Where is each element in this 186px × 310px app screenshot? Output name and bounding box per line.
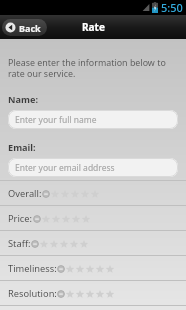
staticText: Overall: bbox=[8, 187, 42, 200]
staticText: Name: bbox=[8, 93, 38, 106]
button[interactable]: Enter your email address bbox=[8, 158, 178, 177]
staticText: Staff: bbox=[8, 237, 31, 250]
button[interactable]: Back bbox=[2, 19, 47, 36]
staticText: Timeliness: bbox=[8, 262, 57, 275]
button[interactable]: Price: bbox=[0, 206, 186, 231]
button[interactable]: Timeliness: bbox=[0, 256, 186, 281]
button[interactable]: Resolution: bbox=[0, 281, 186, 306]
staticText: Rate bbox=[82, 20, 105, 34]
staticText: Enter your email address bbox=[15, 162, 115, 174]
staticText: Resolution: bbox=[8, 287, 57, 300]
staticText: Please enter the information below to ra… bbox=[8, 56, 166, 80]
staticText: Back bbox=[19, 22, 41, 34]
staticText: 5:50 bbox=[161, 0, 183, 15]
staticText: Email: bbox=[8, 141, 36, 154]
staticText: Price: bbox=[8, 212, 33, 225]
button[interactable]: Staff: bbox=[0, 231, 186, 256]
button[interactable]: Overall: bbox=[0, 181, 186, 206]
button[interactable]: Enter your full name bbox=[8, 110, 178, 129]
staticText: Enter your full name bbox=[15, 114, 97, 126]
